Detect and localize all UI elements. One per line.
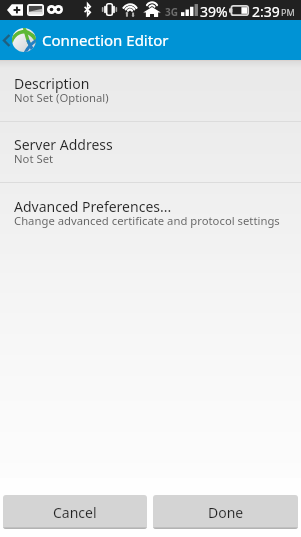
staticText: 39% xyxy=(200,2,228,21)
button[interactable]: Navigate up xyxy=(0,20,38,60)
staticText: Change advanced certificate and protocol… xyxy=(14,213,280,228)
staticText: Not Set (Optional) xyxy=(14,90,109,105)
staticText: Cancel xyxy=(53,503,97,522)
staticText: Description xyxy=(14,74,90,93)
button[interactable]: Server Address xyxy=(0,122,301,182)
staticText: Connection Editor xyxy=(42,30,169,50)
staticText: Not Set xyxy=(14,151,54,166)
button[interactable]: Cancel xyxy=(3,495,147,529)
staticText: Done xyxy=(208,503,244,522)
staticText: Server Address xyxy=(14,135,113,154)
staticText: 2:39 xyxy=(252,2,280,21)
staticText: PM xyxy=(281,6,295,18)
button[interactable]: Description xyxy=(0,60,301,121)
staticText: Advanced Preferences... xyxy=(14,197,172,216)
button[interactable]: Advanced Preferences... xyxy=(0,183,301,244)
staticText: 3G xyxy=(165,5,178,19)
button[interactable]: Done xyxy=(153,495,298,529)
